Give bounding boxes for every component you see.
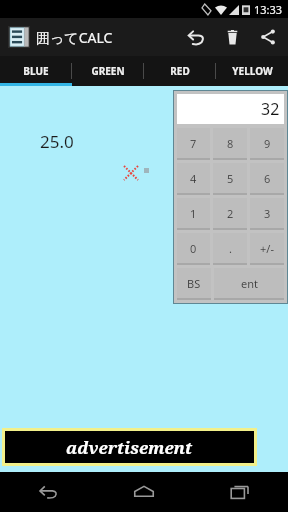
staticText: 32	[261, 98, 280, 120]
staticText: 13:33	[254, 2, 283, 17]
staticText: 25.0	[40, 130, 74, 153]
button[interactable]: Home	[96, 472, 192, 512]
staticText: 0	[190, 241, 197, 256]
staticText: 3	[264, 206, 271, 221]
staticText: +/-	[260, 241, 274, 256]
button[interactable]: Back	[0, 472, 96, 512]
button[interactable]: 4	[177, 163, 210, 193]
button[interactable]: ent	[214, 268, 284, 298]
button[interactable]: BLUE	[0, 56, 72, 86]
button[interactable]: 32	[177, 94, 284, 124]
button[interactable]: BS	[177, 268, 211, 298]
button[interactable]: 3	[250, 198, 284, 228]
button[interactable]: 1	[177, 198, 210, 228]
staticText: advertisement	[66, 436, 193, 459]
button[interactable]: +/-	[250, 233, 284, 263]
staticText: 5	[227, 171, 234, 186]
button[interactable]: 7	[177, 128, 210, 158]
button[interactable]: 9	[250, 128, 284, 158]
staticText: 9	[264, 136, 271, 151]
button[interactable]: Share	[250, 18, 286, 56]
staticText: ent	[241, 276, 258, 291]
button[interactable]: 2	[213, 198, 247, 228]
staticText: 7	[190, 136, 197, 151]
staticText: 囲ってCALC	[36, 28, 113, 47]
button[interactable]: 8	[213, 128, 247, 158]
button[interactable]: Recent apps	[192, 472, 288, 512]
button[interactable]: advertisement	[5, 431, 254, 463]
staticText: GREEN	[91, 64, 125, 78]
staticText: 2	[227, 206, 234, 221]
staticText: BLUE	[23, 64, 49, 78]
staticText: BS	[187, 276, 201, 291]
staticText: RED	[170, 64, 190, 78]
button[interactable]: YELLOW	[216, 56, 288, 86]
button[interactable]: 0	[177, 233, 210, 263]
staticText: 6	[264, 171, 271, 186]
staticText: 4	[190, 171, 197, 186]
button[interactable]: RED	[144, 56, 216, 86]
button[interactable]: 6	[250, 163, 284, 193]
staticText: YELLOW	[232, 64, 273, 78]
staticText: 1	[190, 206, 197, 221]
staticText: .	[229, 241, 232, 256]
button[interactable]: Delete	[214, 18, 250, 56]
button[interactable]: .	[213, 233, 247, 263]
button[interactable]: 5	[213, 163, 247, 193]
button[interactable]: GREEN	[72, 56, 144, 86]
button[interactable]: Undo	[178, 18, 214, 56]
staticText: 8	[227, 136, 234, 151]
